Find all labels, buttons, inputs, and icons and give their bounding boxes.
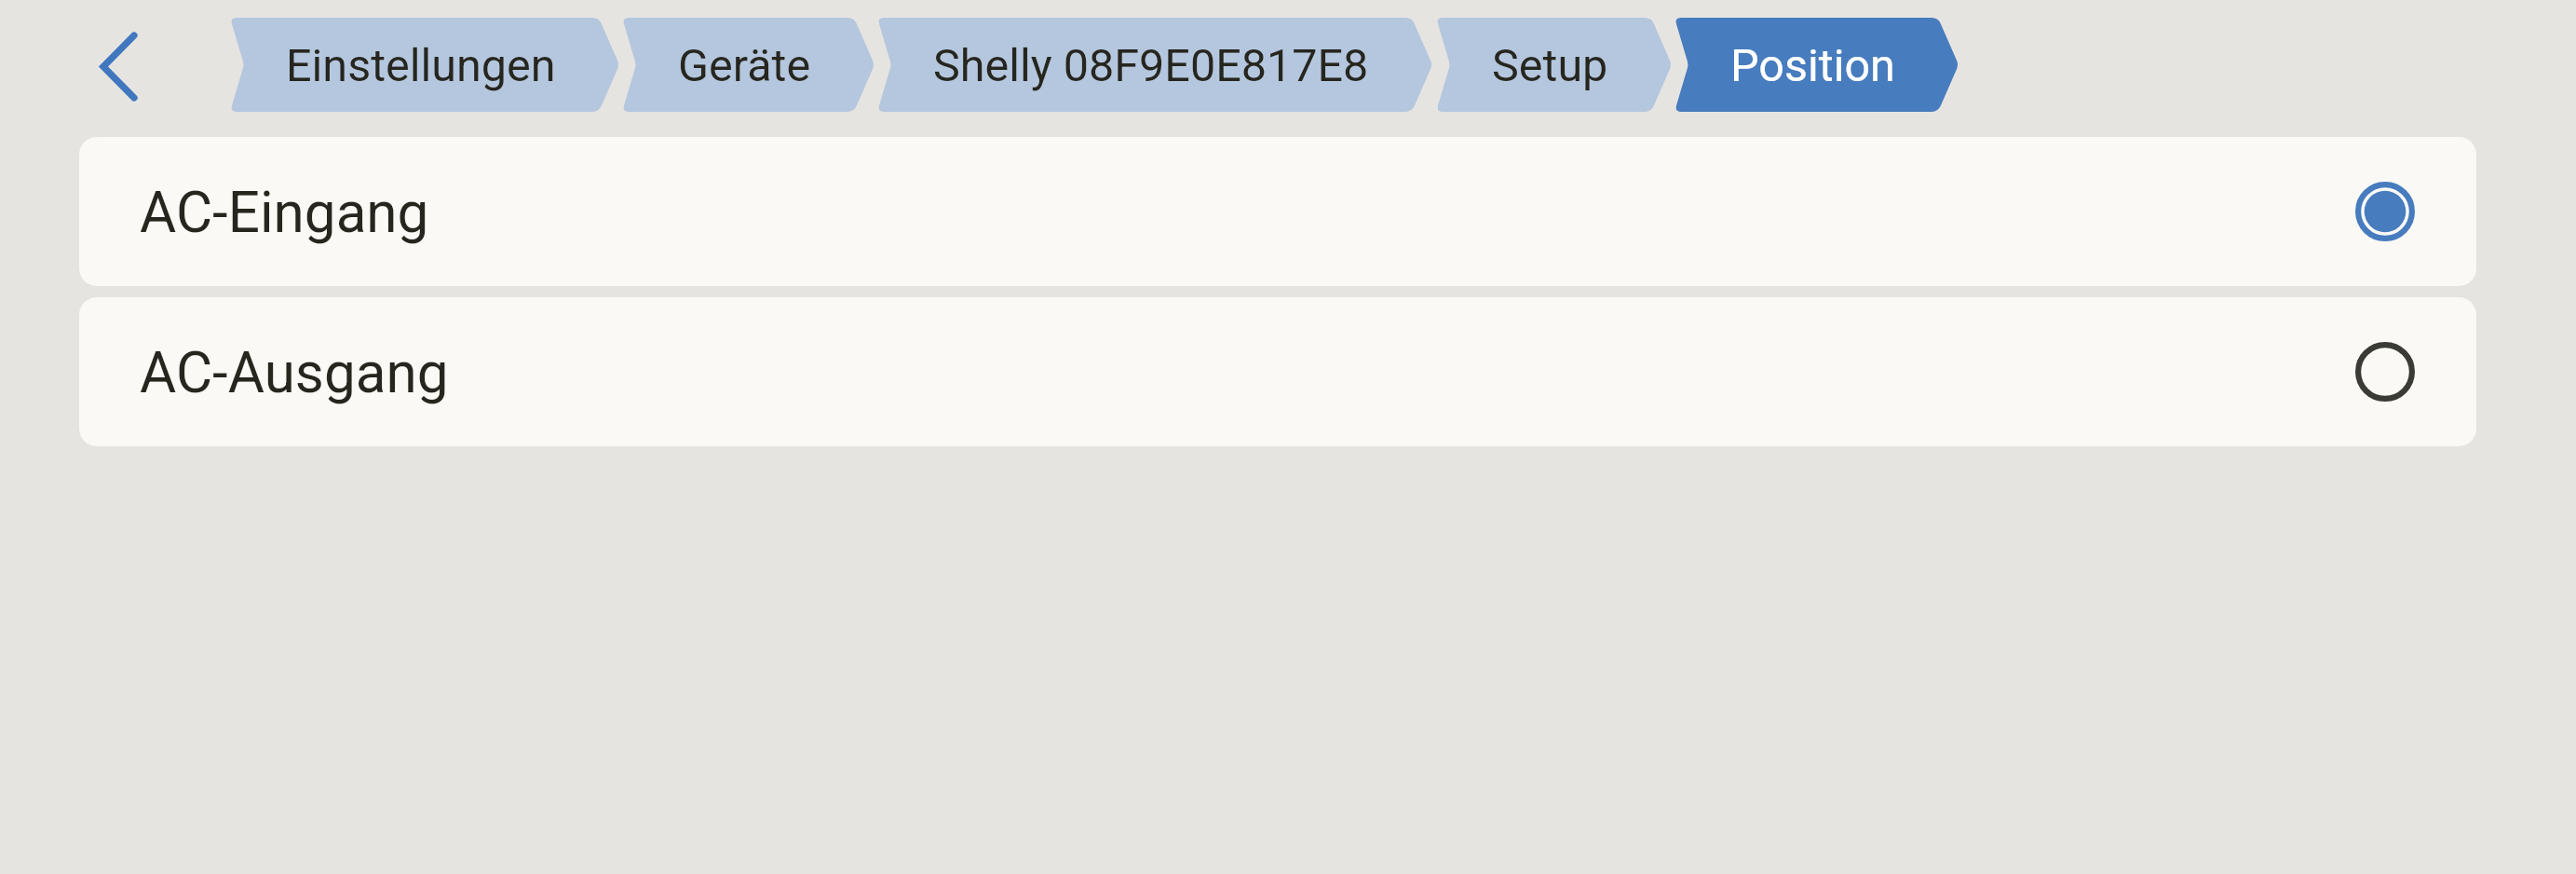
button[interactable]: Setup [1436,18,1672,112]
button[interactable]: Shelly 08F9E0E817E8 [877,18,1432,112]
staticText: Shelly 08F9E0E817E8 [933,39,1369,92]
staticText: Setup [1492,39,1608,92]
button[interactable]: AC-Eingang [79,137,2476,286]
staticText: AC-Ausgang [140,340,449,406]
button[interactable]: Position [1674,18,1959,112]
staticText: Geräte [678,39,811,92]
staticText: AC-Eingang [140,180,429,246]
button[interactable]: AC-Ausgang [79,297,2476,446]
button[interactable]: Zurück [88,18,149,112]
button[interactable]: Geräte [622,18,874,112]
staticText: Position [1730,39,1895,92]
button[interactable]: Einstellungen [230,18,619,112]
staticText: Einstellungen [286,39,556,92]
